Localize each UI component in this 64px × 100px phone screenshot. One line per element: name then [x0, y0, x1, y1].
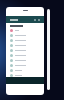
button[interactable] — [6, 58, 44, 63]
button[interactable] — [6, 73, 44, 78]
button[interactable] — [6, 63, 44, 68]
button[interactable] — [6, 48, 44, 53]
button[interactable] — [6, 33, 44, 38]
button[interactable] — [6, 16, 44, 23]
button[interactable] — [6, 68, 44, 73]
button[interactable] — [6, 38, 44, 43]
button[interactable] — [6, 43, 44, 48]
button[interactable] — [6, 53, 44, 58]
button[interactable] — [6, 28, 44, 33]
